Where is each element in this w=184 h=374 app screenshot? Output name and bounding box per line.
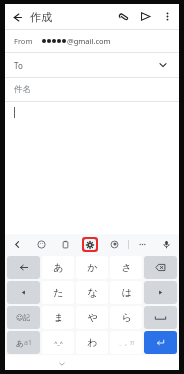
other: Expand recipients (156, 58, 170, 72)
button[interactable]: Key (144, 256, 177, 279)
button[interactable]: To (5, 53, 179, 77)
staticText: 、。?! (119, 339, 134, 347)
button[interactable]: Clipboard (58, 237, 73, 252)
button[interactable]: は (110, 281, 142, 304)
button[interactable]: Voice input (159, 237, 174, 252)
staticText: ら (121, 311, 132, 324)
staticText: From (14, 36, 33, 46)
staticText: な (87, 286, 98, 299)
staticText: あ (53, 261, 64, 274)
staticText: 作成 (30, 10, 52, 24)
button[interactable]: Previous (10, 237, 25, 252)
button[interactable]: Keyboard settings (84, 239, 96, 250)
button[interactable]: た (42, 281, 74, 304)
staticText: ^_^ (54, 339, 63, 346)
staticText: ☺記 (16, 313, 31, 322)
button[interactable]: Stickers (34, 237, 49, 252)
button[interactable]: ま (42, 306, 74, 329)
button[interactable]: 、。?! (110, 331, 142, 354)
staticText: 件名 (14, 84, 31, 95)
staticText: あ (16, 339, 24, 348)
button[interactable]: Key (144, 281, 177, 304)
button[interactable]: From (5, 30, 179, 52)
staticText: た (53, 286, 64, 299)
button[interactable]: か (76, 256, 108, 279)
button[interactable]: Key (7, 306, 40, 329)
button[interactable]: Attach file (114, 7, 133, 26)
button[interactable]: Send (136, 7, 155, 26)
button[interactable]: な (76, 281, 108, 304)
button[interactable]: Key (144, 306, 177, 329)
staticText: a1 (24, 338, 32, 348)
button[interactable]: ら (110, 306, 142, 329)
button[interactable]: Back (8, 8, 26, 26)
staticText: か (87, 261, 98, 274)
button[interactable]: わ (76, 331, 108, 354)
staticText: ま (53, 311, 64, 324)
button[interactable]: や (76, 306, 108, 329)
staticText: さ (121, 261, 132, 274)
button[interactable]: あ (42, 256, 74, 279)
button[interactable] (5, 102, 179, 130)
button[interactable]: Enter (144, 331, 177, 354)
button[interactable]: 件名 (5, 78, 179, 101)
staticText: や (87, 311, 98, 324)
staticText: は (121, 286, 132, 299)
button[interactable]: Themes (107, 237, 122, 252)
button[interactable]: Key (7, 256, 40, 279)
button[interactable]: Key (7, 281, 40, 304)
button[interactable]: Key (7, 331, 40, 354)
staticText: @gmail.com (67, 36, 111, 46)
staticText: わ (87, 336, 98, 349)
button[interactable]: ^_^ (42, 331, 74, 354)
button[interactable]: さ (110, 256, 142, 279)
button[interactable]: Hide keyboard (57, 359, 67, 369)
button[interactable]: More (135, 237, 150, 252)
staticText: To (14, 60, 23, 71)
button[interactable]: More options (158, 7, 177, 26)
